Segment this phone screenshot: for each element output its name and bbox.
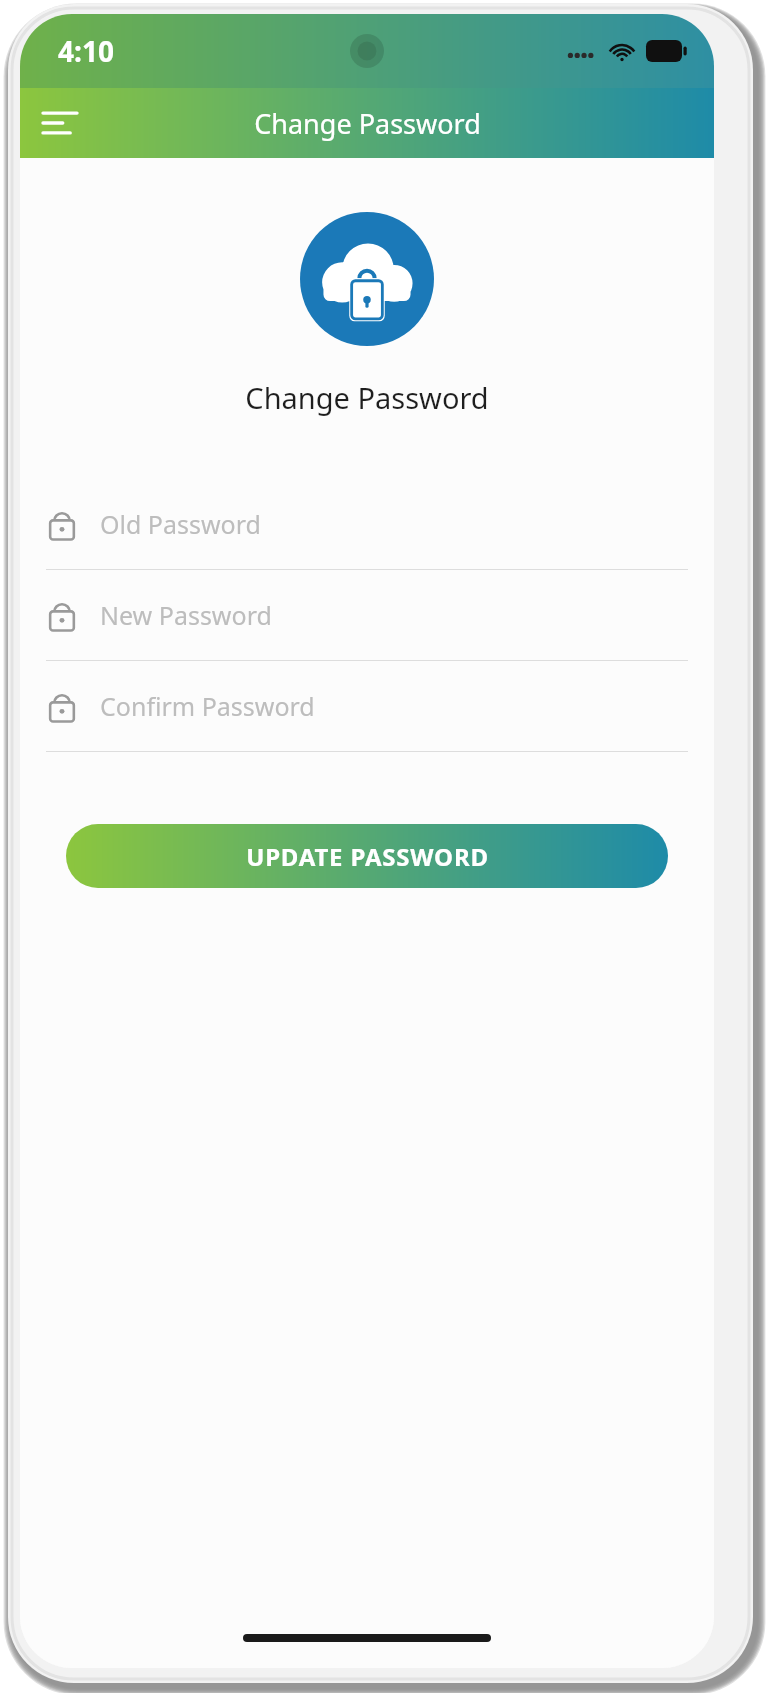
staticText: Change Password xyxy=(254,105,481,142)
staticText: UPDATE PASSWORD xyxy=(246,840,489,873)
staticText: Confirm Password xyxy=(100,689,315,723)
button[interactable]: UPDATE PASSWORD xyxy=(66,824,668,888)
staticText: Old Password xyxy=(100,507,261,541)
staticText: Change Password xyxy=(245,378,489,417)
staticText: New Password xyxy=(100,598,272,632)
button[interactable]: Old Password xyxy=(20,479,714,569)
button[interactable]: New Password xyxy=(20,570,714,660)
button[interactable]: Confirm Password xyxy=(20,661,714,751)
button[interactable]: Open navigation menu xyxy=(30,93,90,153)
staticText: 4:10 xyxy=(58,32,114,70)
